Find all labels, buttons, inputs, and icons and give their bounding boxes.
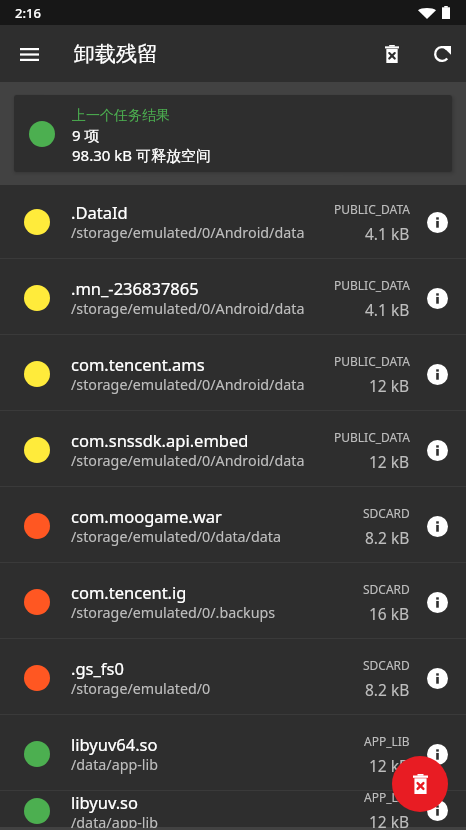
staticText: 8.2 kB bbox=[365, 527, 410, 548]
button[interactable]: 上一个任务结果 bbox=[14, 95, 452, 172]
staticText: libyuv64.so bbox=[71, 733, 158, 755]
staticText: /storage/emulated/0/.backups bbox=[71, 603, 276, 622]
staticText: APP_LIB bbox=[364, 733, 410, 749]
staticText: 16 kB bbox=[369, 603, 410, 624]
staticText: /storage/emulated/0/Android/data bbox=[71, 299, 305, 318]
staticText: 2:16 bbox=[15, 4, 41, 22]
button[interactable]: .DataId bbox=[0, 185, 466, 258]
staticText: SDCARD bbox=[363, 581, 410, 597]
staticText: com.tencent.ams bbox=[71, 353, 205, 375]
button[interactable]: Refresh bbox=[419, 32, 463, 76]
staticText: 卸载残留 bbox=[74, 41, 158, 67]
staticText: com.tencent.ig bbox=[71, 581, 187, 603]
staticText: 12 kB bbox=[369, 451, 410, 472]
button[interactable]: .gs_fs0 bbox=[0, 638, 466, 714]
staticText: SDCARD bbox=[363, 657, 410, 673]
staticText: /storage/emulated/0/Android/data bbox=[71, 375, 305, 394]
button[interactable]: Delete all bbox=[392, 756, 448, 812]
button[interactable]: Info bbox=[427, 212, 448, 233]
staticText: 上一个任务结果 bbox=[72, 107, 170, 125]
button[interactable]: Info bbox=[427, 288, 448, 309]
staticText: PUBLIC_DATA bbox=[334, 201, 410, 217]
button[interactable]: com.moogame.war bbox=[0, 486, 466, 562]
staticText: /data/app-lib bbox=[71, 813, 159, 828]
staticText: /storage/emulated/0 bbox=[71, 679, 211, 698]
staticText: /storage/emulated/0/data/data bbox=[71, 527, 281, 546]
staticText: PUBLIC_DATA bbox=[334, 277, 410, 293]
staticText: 98.30 kB 可释放空间 bbox=[72, 145, 211, 165]
button[interactable]: libyuv.so bbox=[0, 790, 466, 827]
staticText: 12 kB bbox=[369, 375, 410, 396]
staticText: PUBLIC_DATA bbox=[334, 429, 410, 445]
staticText: 12 kB bbox=[369, 811, 410, 830]
button[interactable]: Info bbox=[427, 668, 448, 689]
staticText: /storage/emulated/0/Android/data bbox=[71, 451, 305, 470]
button[interactable]: Delete bbox=[371, 30, 419, 78]
staticText: /data/app-lib bbox=[71, 755, 159, 774]
staticText: 12 kB bbox=[369, 755, 410, 776]
staticText: PUBLIC_DATA bbox=[334, 353, 410, 369]
button[interactable]: Info bbox=[427, 364, 448, 385]
staticText: 4.1 kB bbox=[365, 223, 410, 244]
button[interactable]: Info bbox=[427, 800, 448, 821]
button[interactable]: Info bbox=[427, 516, 448, 537]
button[interactable]: Info bbox=[427, 592, 448, 613]
staticText: libyuv.so bbox=[71, 791, 138, 813]
staticText: 9 项 bbox=[72, 125, 100, 145]
staticText: com.snssdk.api.embed bbox=[71, 429, 249, 451]
button[interactable]: .mn_-236837865 bbox=[0, 258, 466, 334]
button[interactable]: Menu bbox=[8, 33, 50, 75]
button[interactable]: libyuv64.so bbox=[0, 714, 466, 790]
staticText: 8.2 kB bbox=[365, 679, 410, 700]
button[interactable]: com.snssdk.api.embed bbox=[0, 410, 466, 486]
button[interactable]: com.tencent.ams bbox=[0, 334, 466, 410]
button[interactable]: com.tencent.ig bbox=[0, 562, 466, 638]
staticText: .gs_fs0 bbox=[71, 657, 124, 679]
staticText: .DataId bbox=[71, 201, 128, 223]
button[interactable]: Info bbox=[427, 440, 448, 461]
button[interactable]: Info bbox=[427, 744, 448, 765]
staticText: SDCARD bbox=[363, 505, 410, 521]
staticText: 4.1 kB bbox=[365, 299, 410, 320]
staticText: /storage/emulated/0/Android/data bbox=[71, 223, 305, 242]
staticText: .mn_-236837865 bbox=[71, 277, 199, 299]
staticText: APP_LIB bbox=[364, 789, 410, 805]
staticText: com.moogame.war bbox=[71, 505, 222, 527]
